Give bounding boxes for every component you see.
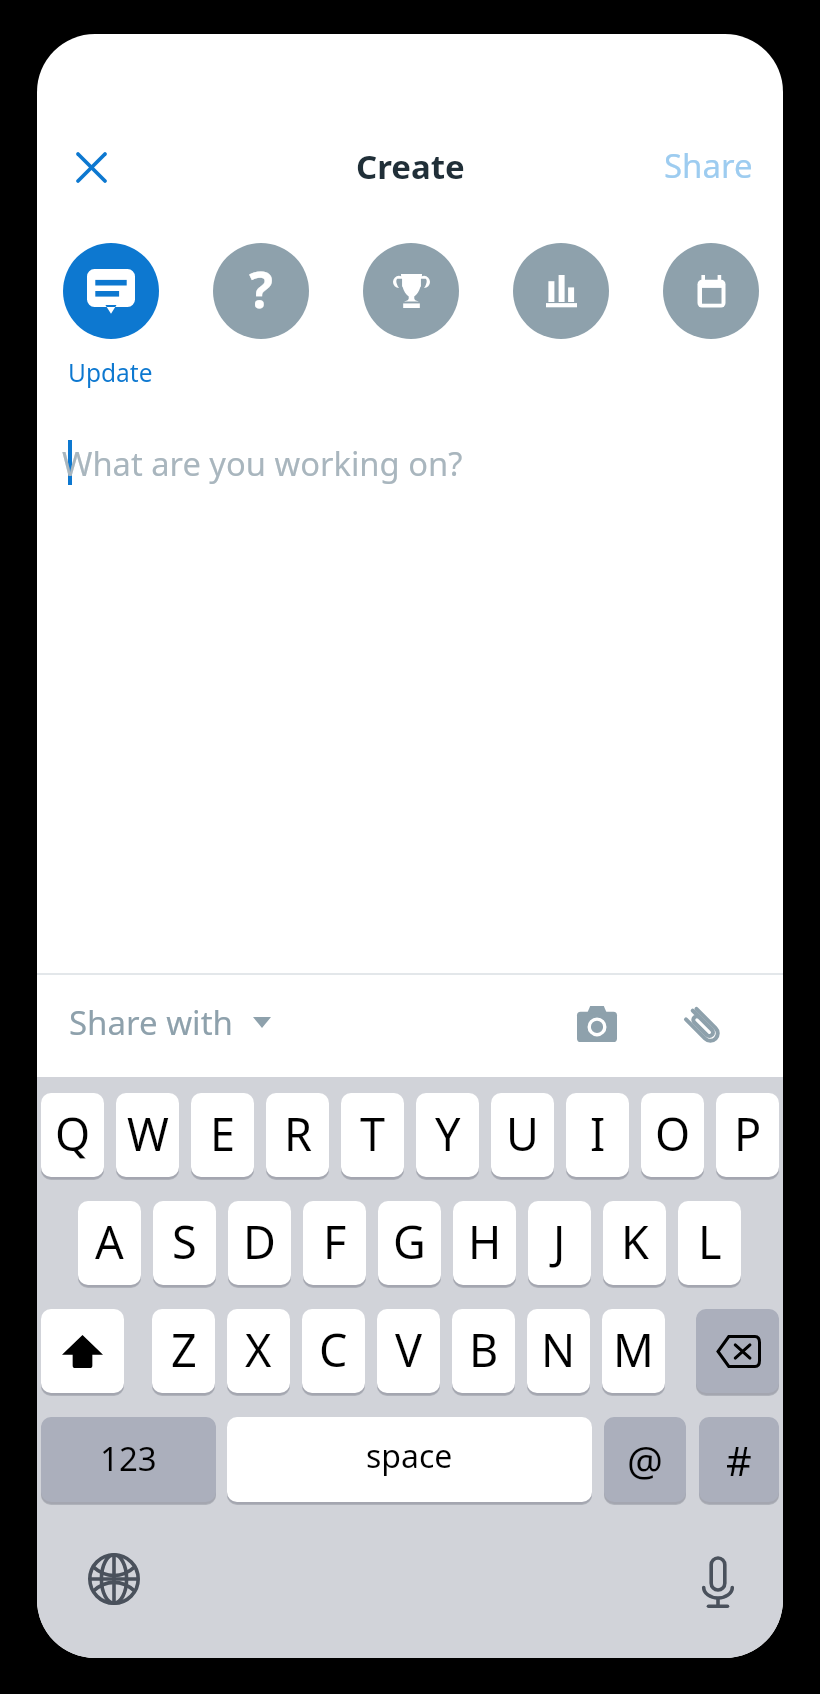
staticText: Update <box>68 356 153 389</box>
staticText: T <box>360 1103 386 1164</box>
button[interactable]: X <box>227 1309 290 1393</box>
button[interactable]: Share <box>643 133 774 198</box>
staticText: A <box>95 1211 124 1272</box>
staticText: J <box>553 1211 566 1272</box>
staticText: space <box>366 1434 453 1478</box>
staticText: F <box>323 1211 347 1272</box>
staticText: K <box>621 1211 649 1272</box>
staticText: O <box>655 1103 691 1164</box>
button[interactable]: D <box>228 1201 291 1285</box>
staticText: I <box>590 1103 606 1164</box>
button[interactable]: Camera <box>557 984 637 1064</box>
staticText: Q <box>55 1103 91 1164</box>
staticText: C <box>319 1319 348 1380</box>
staticText: Y <box>435 1103 461 1164</box>
button[interactable]: S <box>153 1201 216 1285</box>
staticText: H <box>468 1211 502 1272</box>
button[interactable]: T <box>341 1093 404 1177</box>
button[interactable]: Voice input <box>682 1547 754 1619</box>
button[interactable]: Change keyboard <box>78 1543 150 1615</box>
button[interactable]: Event <box>663 243 759 339</box>
button[interactable]: L <box>678 1201 741 1285</box>
staticText: S <box>172 1211 197 1272</box>
button[interactable]: P <box>716 1093 779 1177</box>
button[interactable]: 123 <box>41 1417 216 1502</box>
staticText: Share <box>664 143 753 188</box>
button[interactable]: Poll <box>513 243 609 339</box>
button[interactable]: Question <box>213 243 309 339</box>
button[interactable]: G <box>378 1201 441 1285</box>
button[interactable]: R <box>266 1093 329 1177</box>
staticText: X <box>245 1319 272 1380</box>
staticText: W <box>127 1103 169 1164</box>
button[interactable]: H <box>453 1201 516 1285</box>
button[interactable]: E <box>191 1093 254 1177</box>
staticText: Create <box>356 144 465 189</box>
staticText: R <box>284 1103 312 1164</box>
button[interactable]: W <box>116 1093 179 1177</box>
staticText: ? <box>249 255 273 323</box>
staticText: 123 <box>100 1436 157 1481</box>
button[interactable]: K <box>603 1201 666 1285</box>
staticText: What are you working on? <box>62 441 463 486</box>
button[interactable]: C <box>302 1309 365 1393</box>
button[interactable]: @ <box>604 1417 686 1502</box>
staticText: Z <box>171 1319 197 1380</box>
staticText: V <box>395 1319 423 1380</box>
button[interactable]: Attach file <box>665 988 745 1068</box>
button[interactable]: A <box>78 1201 141 1285</box>
button[interactable]: U <box>491 1093 554 1177</box>
button[interactable] <box>696 1309 779 1393</box>
button[interactable]: Z <box>152 1309 215 1393</box>
button[interactable] <box>41 1309 124 1393</box>
button[interactable]: O <box>641 1093 704 1177</box>
staticText: E <box>210 1103 236 1164</box>
staticText: @ <box>627 1433 663 1487</box>
button[interactable]: Share with <box>55 988 285 1057</box>
button[interactable]: Win <box>363 243 459 339</box>
button[interactable]: J <box>528 1201 591 1285</box>
staticText: N <box>541 1319 576 1380</box>
staticText: # <box>726 1433 752 1487</box>
button[interactable]: Update <box>63 243 159 339</box>
button[interactable]: N <box>527 1309 590 1393</box>
button[interactable]: Close <box>57 133 125 201</box>
button[interactable]: Y <box>416 1093 479 1177</box>
staticText: B <box>469 1319 499 1380</box>
staticText: L <box>698 1211 722 1272</box>
staticText: U <box>506 1103 539 1164</box>
button[interactable]: B <box>452 1309 515 1393</box>
staticText: P <box>734 1103 762 1164</box>
staticText: G <box>393 1211 426 1272</box>
staticText: M <box>613 1319 654 1380</box>
button[interactable]: space <box>227 1417 592 1502</box>
button[interactable]: F <box>303 1201 366 1285</box>
staticText: Share with <box>69 1000 233 1045</box>
staticText: D <box>243 1211 276 1272</box>
button[interactable]: # <box>699 1417 779 1502</box>
button[interactable]: I <box>566 1093 629 1177</box>
button[interactable]: M <box>602 1309 665 1393</box>
button[interactable]: Q <box>41 1093 104 1177</box>
button[interactable]: V <box>377 1309 440 1393</box>
